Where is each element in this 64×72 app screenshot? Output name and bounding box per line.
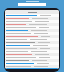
button[interactable] [5, 38, 59, 41]
button[interactable] [5, 29, 59, 32]
button[interactable] [5, 44, 59, 47]
button[interactable]: Primary action [6, 68, 58, 69]
button[interactable] [5, 14, 59, 17]
button[interactable] [5, 65, 59, 68]
button[interactable] [5, 26, 59, 29]
button[interactable]: App bar [5, 10, 59, 14]
button[interactable] [5, 53, 59, 56]
button[interactable] [5, 23, 59, 26]
button[interactable] [5, 50, 59, 53]
button[interactable] [5, 20, 59, 23]
button[interactable] [5, 17, 59, 20]
button[interactable] [5, 56, 59, 59]
button[interactable] [5, 59, 59, 62]
button[interactable] [5, 32, 59, 35]
button[interactable] [5, 35, 59, 38]
button[interactable] [5, 62, 59, 65]
button[interactable] [5, 41, 59, 44]
button[interactable] [5, 47, 59, 50]
